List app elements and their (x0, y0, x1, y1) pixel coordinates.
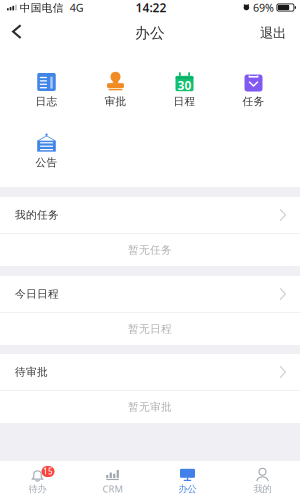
staticText: 今日日程 (15, 287, 59, 300)
button[interactable]: 今日日程 (0, 276, 300, 312)
staticText: 退出 (260, 25, 286, 41)
button[interactable]: 任务 (219, 69, 288, 110)
button[interactable]: 退出 (246, 20, 300, 50)
staticText: 审批 (104, 95, 126, 108)
button[interactable]: 办公 (150, 461, 225, 500)
staticText: 中国电信 4G (17, 0, 84, 15)
staticText: 办公 (135, 24, 165, 42)
staticText: 我的 (253, 483, 271, 495)
staticText: 日程 (173, 95, 195, 108)
button[interactable]: 待审批 (0, 354, 300, 390)
staticText: CRM (102, 483, 122, 495)
button[interactable]: CRM (75, 461, 150, 500)
staticText: 待审批 (15, 365, 48, 378)
staticText: 30 (177, 77, 191, 93)
staticText: 14:22 (135, 0, 166, 15)
staticText: 15 (43, 466, 53, 477)
button[interactable]: 审批 (81, 69, 150, 110)
staticText: 暂无审批 (128, 400, 172, 413)
button[interactable]: 我的任务 (0, 197, 300, 233)
button[interactable]: 日志 (12, 69, 81, 110)
button[interactable]: Back (0, 20, 36, 49)
staticText: 暂无任务 (128, 243, 172, 256)
staticText: 待办 (28, 483, 46, 495)
button[interactable]: 公告 (12, 130, 81, 171)
staticText: 我的任务 (15, 208, 59, 221)
button[interactable]: 我的 (225, 461, 300, 500)
staticText: 暂无日程 (128, 322, 172, 335)
button[interactable]: 30 (150, 69, 219, 110)
staticText: 任务 (242, 95, 264, 108)
staticText: 办公 (178, 483, 196, 495)
staticText: 日志 (35, 95, 57, 108)
button[interactable]: 15 (0, 461, 75, 500)
staticText: 69% (250, 0, 274, 15)
staticText: 公告 (35, 156, 57, 169)
